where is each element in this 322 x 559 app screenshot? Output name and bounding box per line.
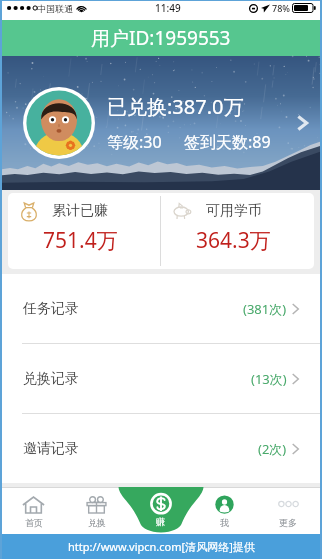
button[interactable]: 邀请记录: [2, 414, 320, 483]
staticText: 兑换记录: [23, 370, 79, 388]
staticText: http://www.vipcn.com[清风网络]提供: [68, 539, 255, 554]
staticText: (13次): [251, 370, 287, 388]
staticText: 可用学币: [206, 202, 262, 220]
button[interactable]: 我: [192, 487, 256, 534]
staticText: 等级:30: [107, 131, 162, 153]
staticText: 首页: [25, 517, 43, 528]
button[interactable]: 可用学币: [161, 193, 314, 269]
button[interactable]: 兑换记录: [2, 344, 320, 413]
staticText: 赚: [156, 516, 165, 527]
button[interactable]: 任务记录: [2, 274, 320, 343]
staticText: 364.3万: [196, 226, 271, 255]
staticText: 更多: [279, 517, 297, 528]
staticText: 兑换: [88, 517, 106, 528]
staticText: 78%: [272, 2, 290, 14]
staticText: 11:49: [155, 1, 181, 15]
staticText: 用户ID:1959553: [91, 25, 231, 51]
other: Details: [296, 112, 309, 134]
button[interactable]: 赚: [128, 487, 192, 534]
button[interactable]: 兑换: [65, 487, 128, 534]
staticText: 已兑换:387.0万: [107, 93, 244, 120]
button[interactable]: 首页: [2, 487, 65, 534]
button[interactable]: 更多: [256, 487, 320, 534]
staticText: 累计已赚: [52, 202, 108, 220]
staticText: 邀请记录: [23, 440, 79, 458]
staticText: (2次): [258, 440, 287, 458]
staticText: 任务记录: [23, 300, 79, 318]
staticText: 签到天数:89: [184, 131, 271, 153]
staticText: 中国联通: [37, 3, 73, 14]
staticText: 751.4万: [43, 226, 118, 255]
button[interactable]: 已兑换:387.0万: [2, 56, 320, 190]
button[interactable]: 累计已赚: [8, 193, 160, 269]
staticText: (381次): [243, 300, 287, 318]
staticText: 我: [220, 517, 229, 528]
